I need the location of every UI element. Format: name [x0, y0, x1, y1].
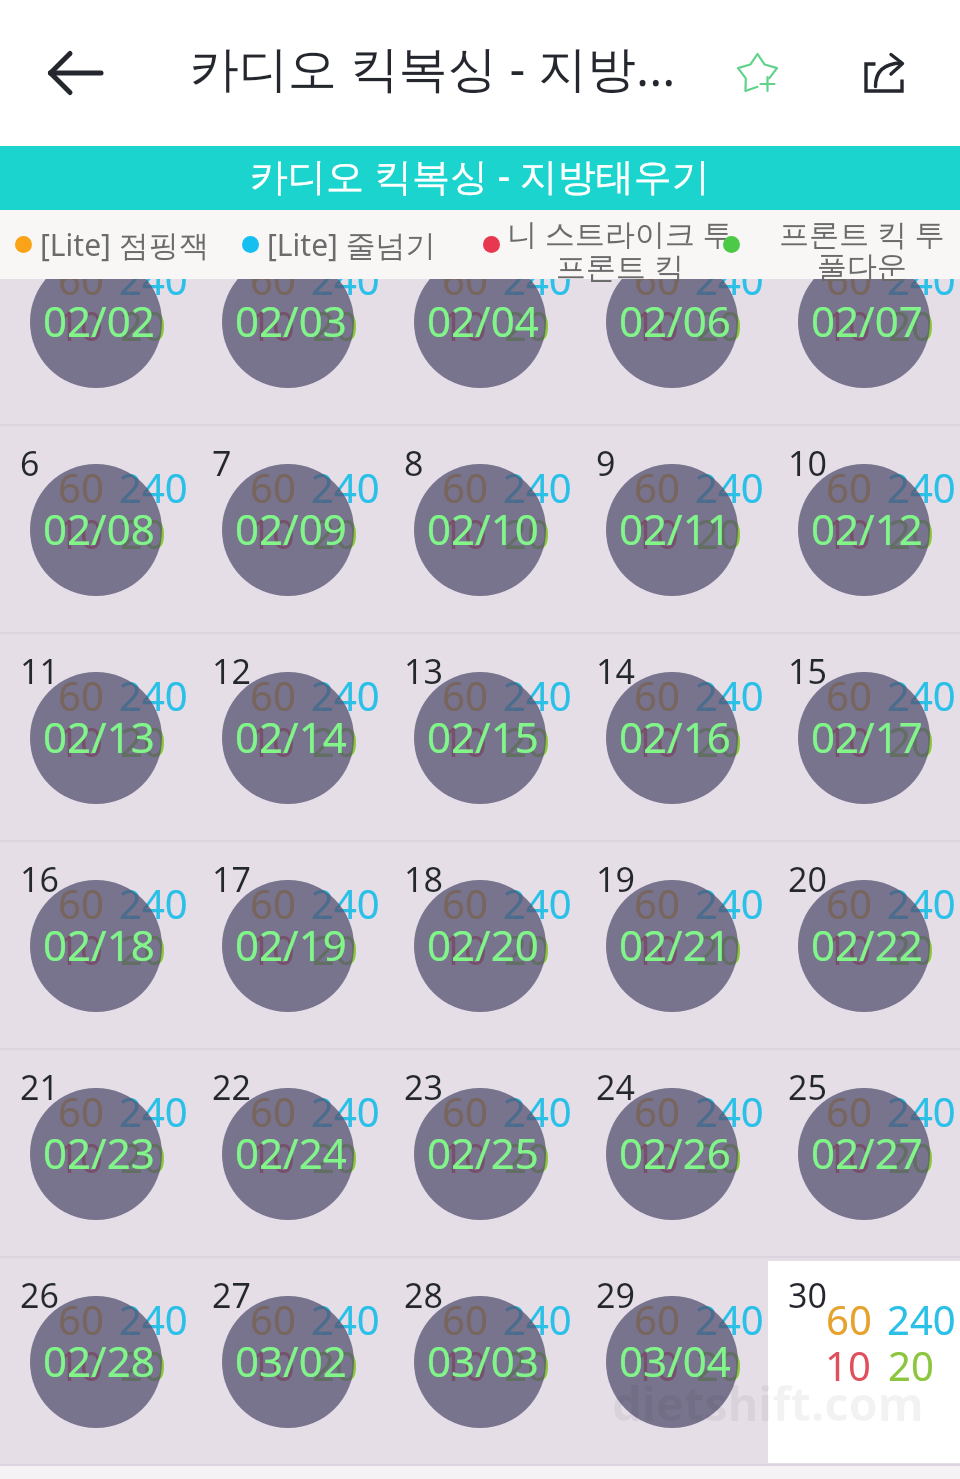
button[interactable]: 27 [192, 1258, 384, 1466]
staticText: 1 [20, 232, 40, 278]
staticText: 240 [119, 460, 188, 514]
staticText: 24 [596, 1064, 635, 1110]
staticText: 20 [696, 922, 742, 976]
staticText: 11 [20, 648, 59, 694]
staticText: 10 [825, 1338, 871, 1392]
button[interactable]: 29 [576, 1258, 768, 1466]
staticText: 20 [312, 922, 358, 976]
staticText: 02/07 [811, 292, 923, 349]
button[interactable]: 7 [192, 426, 384, 634]
staticText: 240 [695, 1292, 764, 1346]
staticText: 10 [57, 922, 103, 976]
staticText: 60 [58, 1084, 104, 1138]
button[interactable]: 18 [384, 842, 576, 1050]
staticText: 240 [503, 876, 572, 930]
button[interactable]: 12 [192, 634, 384, 842]
staticText: dietshift.com [612, 1371, 952, 1435]
button[interactable]: 19 [576, 842, 768, 1050]
staticText: 18 [404, 856, 443, 902]
button[interactable]: 14 [576, 634, 768, 842]
staticText: 20 [888, 506, 934, 560]
button[interactable]: 6 [0, 426, 192, 634]
button[interactable]: 25 [768, 1050, 960, 1258]
staticText: 25 [788, 1064, 827, 1110]
button[interactable]: 17 [192, 842, 384, 1050]
staticText: 03/03 [427, 1332, 539, 1389]
staticText: 240 [503, 460, 572, 514]
staticText: 60 [826, 460, 872, 514]
button[interactable]: 3 [384, 218, 576, 426]
staticText: 15 [788, 648, 827, 694]
staticText: 02/24 [235, 1124, 347, 1181]
button[interactable]: 20 [768, 842, 960, 1050]
staticText: 니 스트라이크 투 프론트 킥 [501, 213, 739, 282]
staticText: 02/12 [811, 500, 923, 557]
staticText: 10 [57, 298, 103, 352]
button[interactable]: 22 [192, 1050, 384, 1258]
staticText: 240 [119, 876, 188, 930]
button[interactable]: Add to favorites [712, 29, 805, 122]
button[interactable]: 프론트 킥 투 풀다운 [723, 210, 960, 279]
staticText: 28 [404, 1272, 443, 1318]
staticText: 13 [404, 648, 443, 694]
staticText: 60 [442, 1084, 488, 1138]
staticText: 10 [249, 1338, 295, 1392]
button[interactable]: 23 [384, 1050, 576, 1258]
staticText: 240 [887, 1292, 956, 1346]
button[interactable]: 10 [768, 426, 960, 634]
button[interactable]: 21 [0, 1050, 192, 1258]
staticText: 60 [634, 1084, 680, 1138]
button[interactable]: 2 [192, 218, 384, 426]
staticText: 23 [404, 1064, 443, 1110]
staticText: 10 [825, 714, 871, 768]
button[interactable]: 4 [576, 218, 768, 426]
button[interactable]: 28 [384, 1258, 576, 1466]
staticText: 20 [888, 298, 934, 352]
staticText: 02/21 [619, 916, 731, 973]
button[interactable]: Back [27, 25, 123, 121]
button[interactable]: 5 [768, 218, 960, 426]
button[interactable]: 11 [0, 634, 192, 842]
staticText: 4 [596, 232, 616, 278]
button[interactable]: 9 [576, 426, 768, 634]
staticText: 03/02 [235, 1332, 347, 1389]
staticText: 60 [634, 876, 680, 930]
button[interactable]: 24 [576, 1050, 768, 1258]
button[interactable]: 1 [0, 218, 192, 426]
button[interactable]: [Lite] 줄넘기 [242, 210, 462, 279]
button[interactable]: [Lite] 점핑잭 [15, 210, 235, 279]
button[interactable]: 26 [0, 1258, 192, 1466]
staticText: 10 [441, 506, 487, 560]
staticText: 20 [504, 714, 550, 768]
staticText: 20 [888, 1338, 934, 1392]
staticText: 9 [596, 440, 616, 486]
staticText: 20 [504, 922, 550, 976]
staticText: 60 [634, 668, 680, 722]
staticText: 12 [212, 648, 251, 694]
staticText: 10 [633, 922, 679, 976]
staticText: 60 [442, 1292, 488, 1346]
staticText: 240 [311, 668, 380, 722]
staticText: 02/26 [619, 1124, 731, 1181]
staticText: 240 [503, 1292, 572, 1346]
button[interactable]: 16 [0, 842, 192, 1050]
staticText: 10 [249, 714, 295, 768]
staticText: 26 [20, 1272, 59, 1318]
button[interactable]: 니 스트라이크 투 프론트 킥 [483, 210, 739, 279]
staticText: 240 [119, 1292, 188, 1346]
button[interactable]: 13 [384, 634, 576, 842]
staticText: 240 [311, 252, 380, 306]
staticText: 02/19 [235, 916, 347, 973]
staticText: 60 [634, 252, 680, 306]
staticText: 카디오 킥복싱 - 지방... [190, 34, 676, 101]
staticText: 20 [696, 298, 742, 352]
staticText: 16 [20, 856, 59, 902]
button[interactable]: 30 [768, 1258, 960, 1466]
button[interactable]: 8 [384, 426, 576, 634]
staticText: 10 [633, 1338, 679, 1392]
button[interactable]: 15 [768, 634, 960, 842]
button[interactable]: Share [838, 29, 930, 121]
staticText: 02/04 [427, 292, 539, 349]
staticText: 60 [58, 668, 104, 722]
staticText: 02/15 [427, 708, 539, 765]
